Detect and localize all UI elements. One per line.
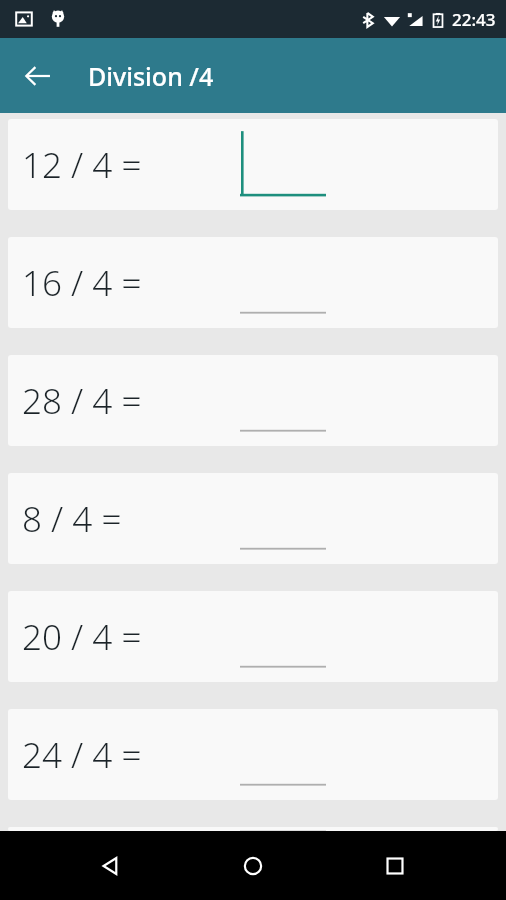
button[interactable]: 32 / 4 = bbox=[8, 827, 498, 831]
button[interactable] bbox=[240, 483, 326, 555]
staticText: 24 / 4 = bbox=[22, 731, 142, 779]
button[interactable]: Back bbox=[12, 50, 64, 102]
button[interactable]: 28 / 4 = bbox=[8, 355, 498, 446]
button[interactable]: Home bbox=[222, 835, 284, 897]
button[interactable] bbox=[240, 601, 326, 673]
button[interactable] bbox=[240, 827, 326, 831]
staticText: 20 / 4 = bbox=[22, 613, 142, 661]
button[interactable]: 8 / 4 = bbox=[8, 473, 498, 564]
button[interactable]: 20 / 4 = bbox=[8, 591, 498, 682]
staticText: 16 / 4 = bbox=[22, 259, 142, 307]
staticText: Division /4 bbox=[88, 59, 214, 93]
staticText: 22:43 bbox=[452, 8, 496, 31]
staticText: 8 / 4 = bbox=[22, 495, 122, 543]
button[interactable] bbox=[240, 247, 326, 319]
button[interactable] bbox=[240, 719, 326, 791]
button[interactable] bbox=[240, 365, 326, 437]
button[interactable] bbox=[240, 129, 326, 201]
button[interactable]: 12 / 4 = bbox=[8, 119, 498, 210]
button[interactable]: Recents bbox=[364, 835, 426, 897]
staticText: 28 / 4 = bbox=[22, 377, 142, 425]
button[interactable]: 16 / 4 = bbox=[8, 237, 498, 328]
button[interactable]: 24 / 4 = bbox=[8, 709, 498, 800]
staticText: 12 / 4 = bbox=[22, 141, 142, 189]
button[interactable]: Back bbox=[80, 835, 142, 897]
